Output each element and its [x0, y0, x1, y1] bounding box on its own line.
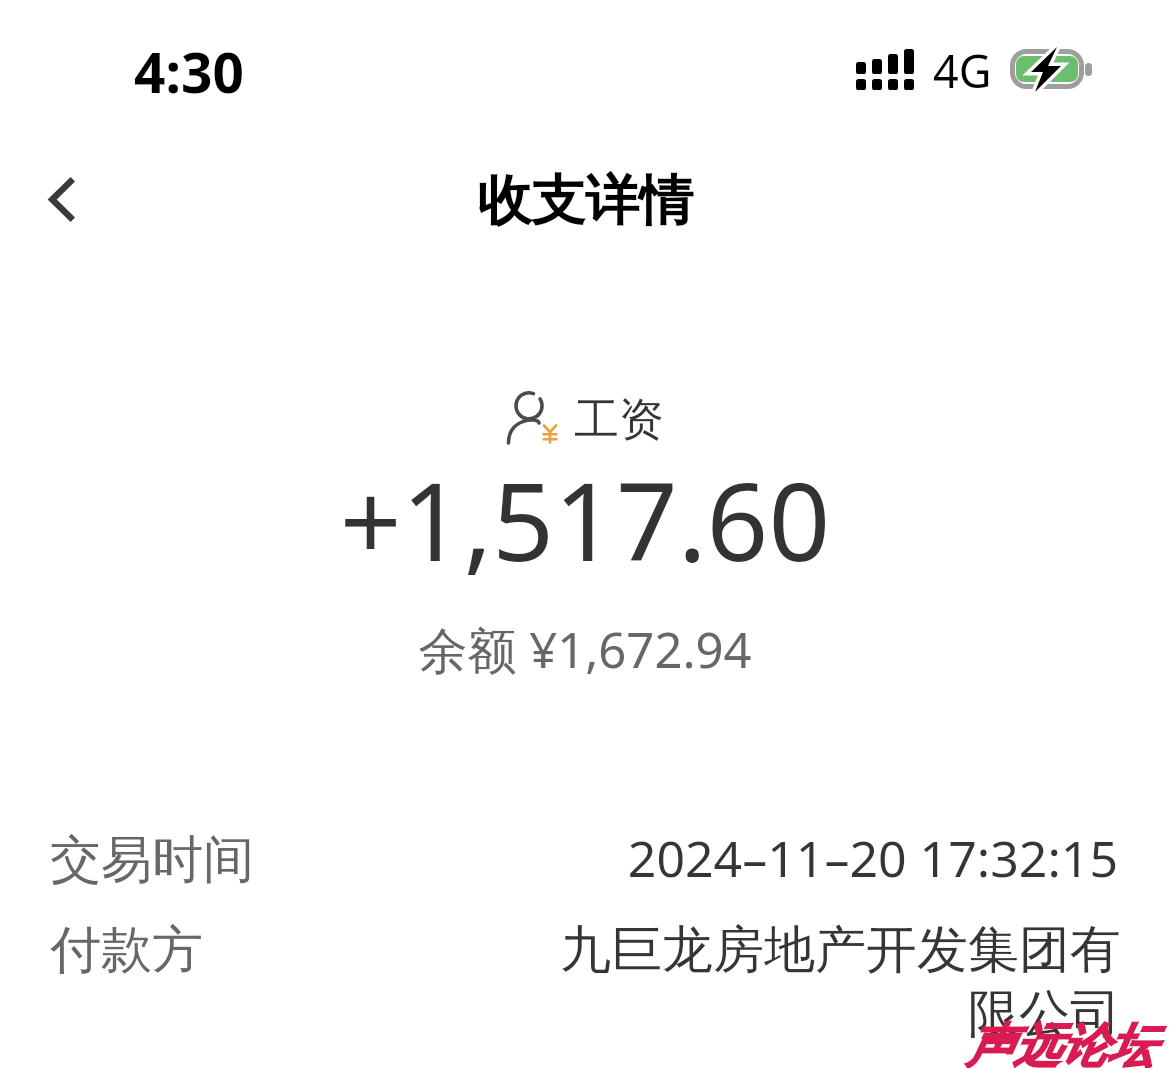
staticText: 余额 ¥1,672.94	[0, 616, 1170, 683]
staticText: 声远论坛	[966, 1017, 1154, 1068]
staticText: 4:30	[134, 34, 244, 109]
staticText: 收支详情	[0, 167, 1170, 235]
staticText: +1,517.60	[0, 446, 1170, 593]
button[interactable]: Back	[22, 159, 102, 239]
staticText: 九巨龙房地产开发集团有限公司	[555, 918, 1121, 1046]
staticText: 4G	[933, 40, 992, 101]
staticText: 工资	[574, 392, 664, 449]
staticText: 付款方	[50, 918, 203, 982]
button[interactable]: 交易时间	[0, 828, 1170, 898]
button[interactable]: 工资	[495, 386, 675, 448]
button[interactable]: 付款方	[0, 918, 1170, 1068]
staticText: 2024–11–20 17:32:15	[627, 824, 1118, 892]
staticText: 交易时间	[50, 828, 254, 892]
